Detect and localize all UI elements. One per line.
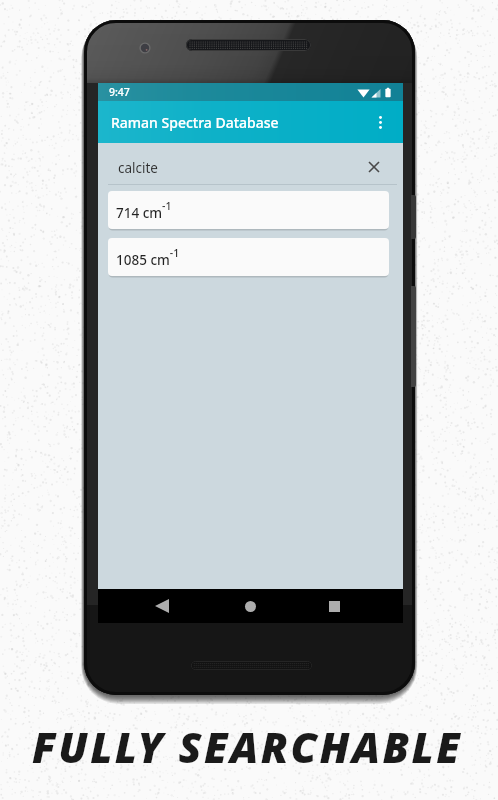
button[interactable]: Clear search — [359, 152, 389, 182]
button[interactable]: Home — [233, 589, 267, 623]
button[interactable]: Recents — [317, 589, 351, 623]
button[interactable]: 714 cm-1 — [108, 191, 389, 229]
staticText: FULLY SEARCHABLE — [32, 718, 463, 775]
button[interactable]: 1085 cm-1 — [108, 238, 389, 276]
staticText: 1085 cm-1 — [116, 246, 180, 269]
button[interactable]: calcite — [98, 143, 403, 185]
button[interactable]: More options — [363, 105, 397, 139]
staticText: 9:47 — [109, 85, 130, 99]
staticText: calcite — [118, 159, 158, 177]
button[interactable]: Back — [145, 589, 179, 623]
staticText: Raman Spectra Database — [111, 113, 279, 132]
staticText: 714 cm-1 — [116, 199, 172, 222]
